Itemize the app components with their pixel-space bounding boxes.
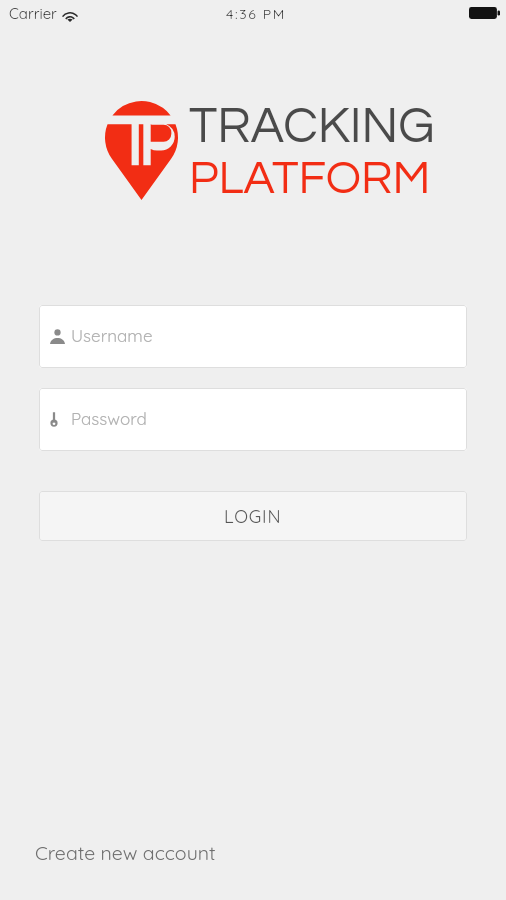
staticText: Create new account: [35, 840, 216, 864]
other: Username: [50, 329, 65, 344]
staticText: LOGIN: [224, 505, 282, 528]
button[interactable]: Password: [39, 388, 467, 451]
staticText: Username: [71, 325, 153, 346]
staticText: 4:36 PM: [226, 5, 286, 23]
button[interactable]: Create new account: [35, 836, 216, 868]
staticText: TRACKING: [189, 101, 435, 153]
staticText: PLATFORM: [189, 154, 431, 202]
button[interactable]: Username: [39, 305, 467, 368]
staticText: Carrier: [9, 4, 57, 23]
button[interactable]: LOGIN: [39, 491, 467, 541]
staticText: Password: [71, 408, 147, 429]
other: Password: [50, 412, 58, 427]
